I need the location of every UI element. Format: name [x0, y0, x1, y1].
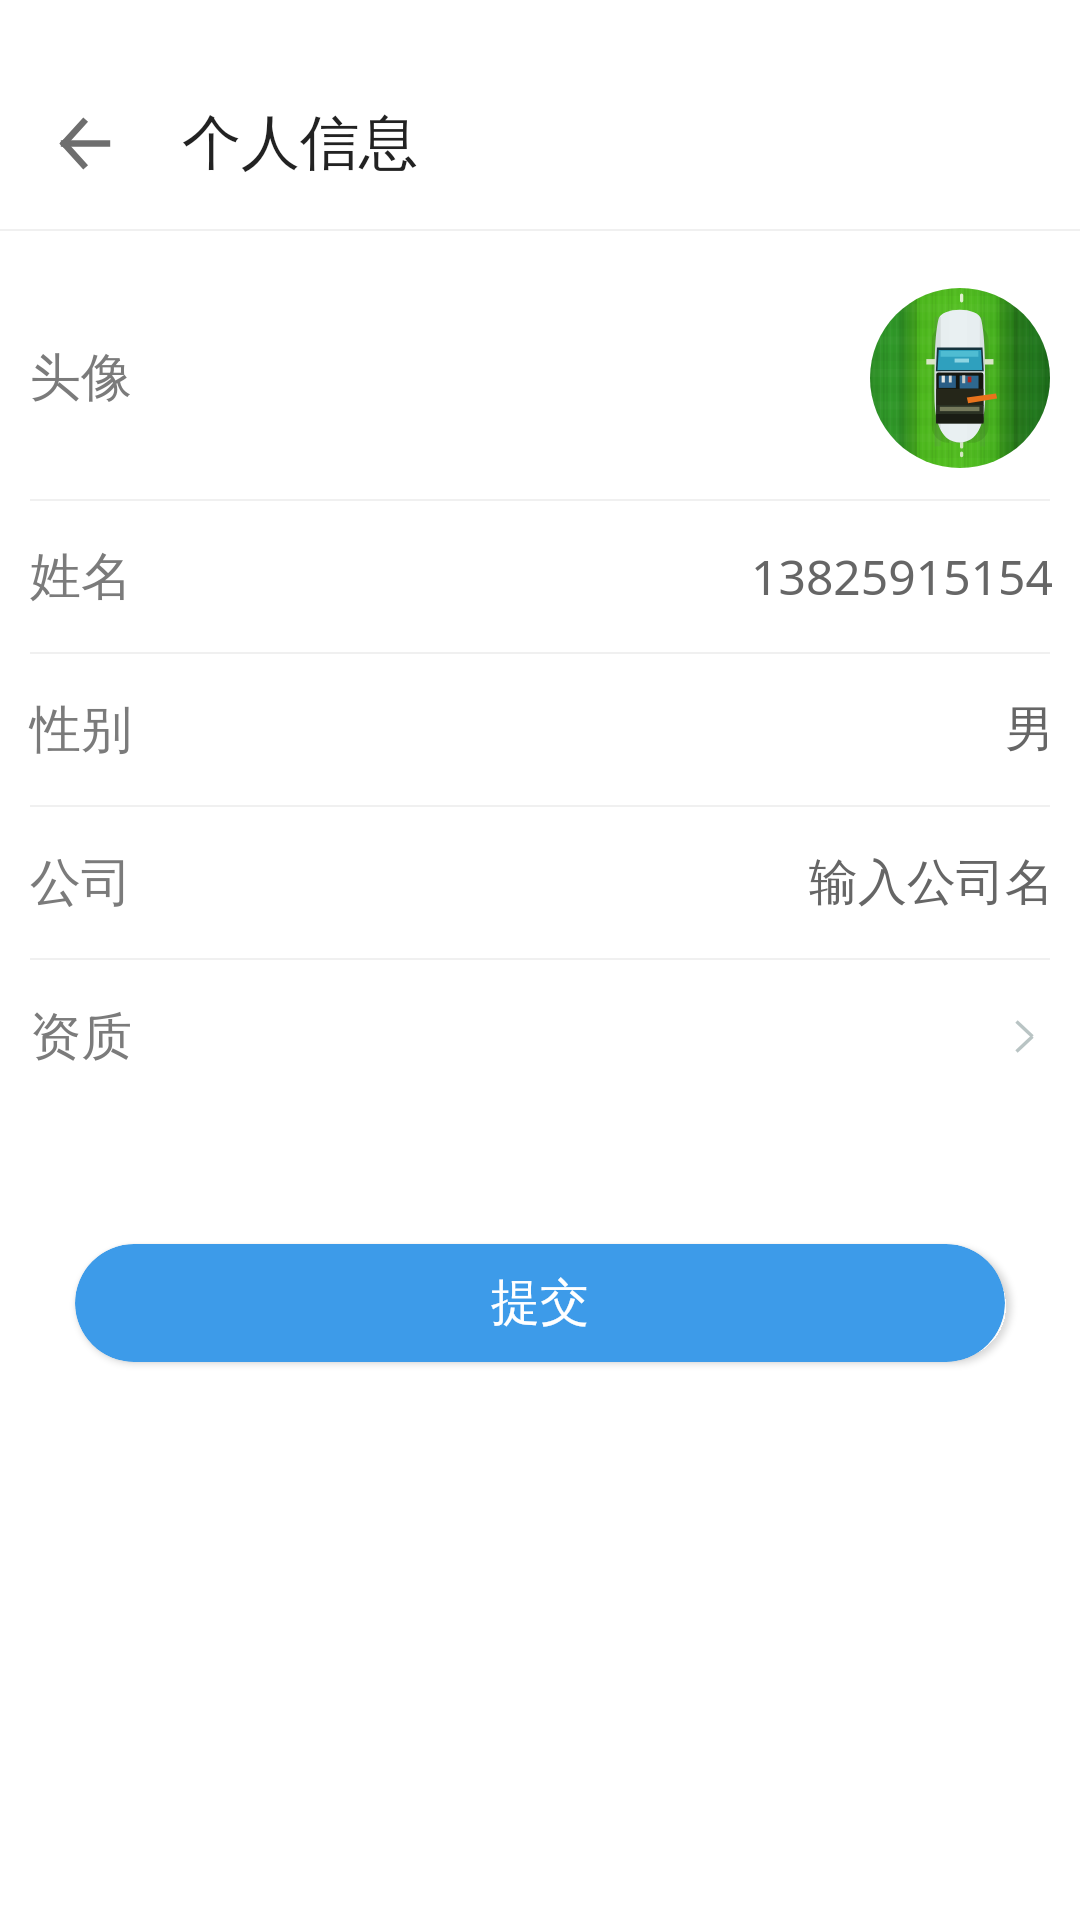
button[interactable]: 姓名: [0, 501, 1080, 652]
staticText: 资质: [30, 1005, 132, 1069]
staticText: 男: [1005, 699, 1054, 761]
button[interactable]: 头像: [0, 231, 1080, 499]
button[interactable]: Change avatar: [870, 288, 1050, 468]
button[interactable]: 性别: [0, 654, 1080, 805]
staticText: 性别: [30, 698, 132, 762]
staticText: 输入公司名: [809, 852, 1054, 914]
staticText: 个人信息: [182, 106, 418, 180]
staticText: 提交: [491, 1272, 589, 1334]
button[interactable]: Back: [36, 95, 132, 191]
button[interactable]: 资质: [0, 960, 1080, 1113]
button[interactable]: 提交: [75, 1244, 1005, 1362]
staticText: 公司: [30, 851, 132, 915]
staticText: 姓名: [30, 545, 132, 609]
staticText: 头像: [30, 346, 132, 410]
staticText: 13825915154: [751, 544, 1054, 609]
button[interactable]: 公司: [0, 807, 1080, 958]
